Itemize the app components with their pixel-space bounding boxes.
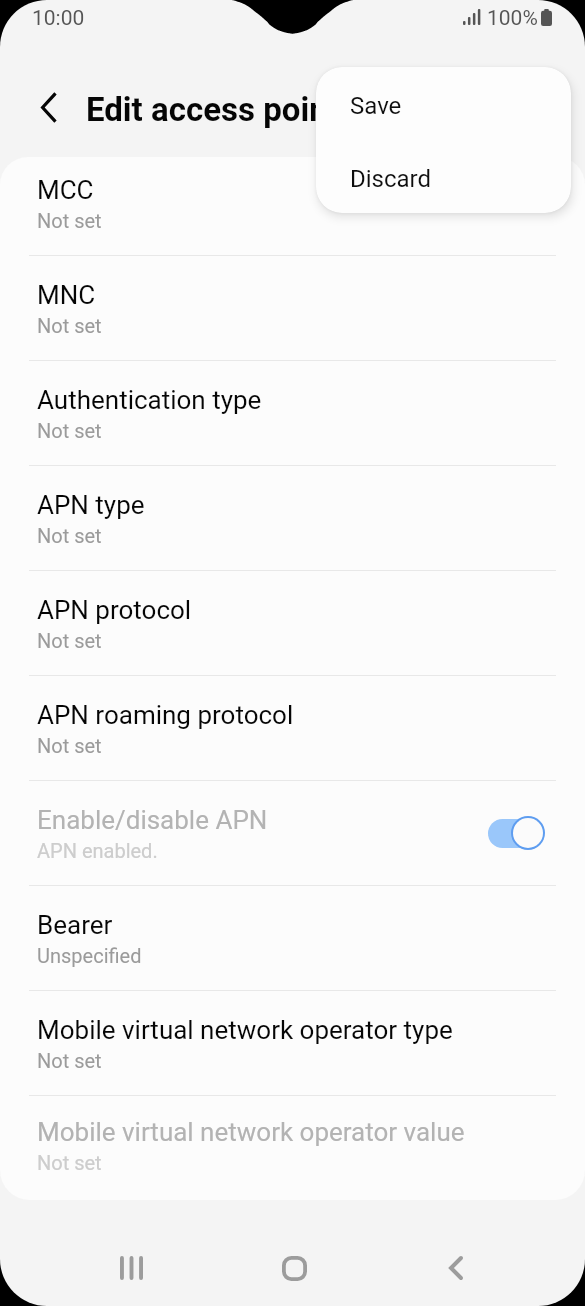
button[interactable]: Authentication type (0, 360, 585, 465)
staticText: Not set (37, 734, 102, 757)
button[interactable]: APN type (0, 465, 585, 570)
button[interactable]: Enable/disable APN (0, 780, 585, 885)
staticText: Not set (37, 419, 102, 442)
staticText: 10:00 (32, 6, 85, 31)
button[interactable]: Discard (316, 140, 571, 213)
button[interactable]: APN roaming protocol (0, 675, 585, 780)
button[interactable]: APN protocol (0, 570, 585, 675)
staticText: Bearer (37, 910, 113, 940)
button[interactable]: Navigate up (13, 72, 83, 142)
staticText: Discard (350, 165, 432, 193)
staticText: APN roaming protocol (37, 700, 294, 730)
button[interactable]: Recent apps (77, 1215, 185, 1306)
staticText: Mobile virtual network operator value (37, 1117, 465, 1147)
staticText: Not set (37, 1151, 102, 1174)
staticText: MNC (37, 280, 96, 310)
staticText: Authentication type (37, 385, 262, 415)
button[interactable]: Back (402, 1215, 510, 1306)
button[interactable]: MCC (0, 157, 585, 255)
staticText: Not set (37, 209, 102, 232)
button[interactable]: Mobile virtual network operator value (0, 1095, 585, 1193)
staticText: APN type (37, 490, 145, 520)
staticText: Unspecified (37, 944, 142, 967)
staticText: Edit access point (86, 90, 339, 129)
staticText: APN enabled. (37, 839, 158, 862)
staticText: Not set (37, 314, 102, 337)
button[interactable]: Save (316, 67, 571, 140)
staticText: Not set (37, 1049, 102, 1072)
staticText: 100% (487, 6, 538, 31)
button[interactable]: MNC (0, 255, 585, 360)
button[interactable]: Mobile virtual network operator type (0, 990, 585, 1095)
button[interactable]: Bearer (0, 885, 585, 990)
button[interactable]: Home (240, 1215, 348, 1306)
staticText: Enable/disable APN (37, 805, 268, 835)
staticText: Not set (37, 629, 102, 652)
staticText: Mobile virtual network operator type (37, 1015, 453, 1045)
staticText: Not set (37, 524, 102, 547)
staticText: Save (350, 92, 402, 120)
staticText: APN protocol (37, 595, 192, 625)
staticText: MCC (37, 175, 94, 205)
